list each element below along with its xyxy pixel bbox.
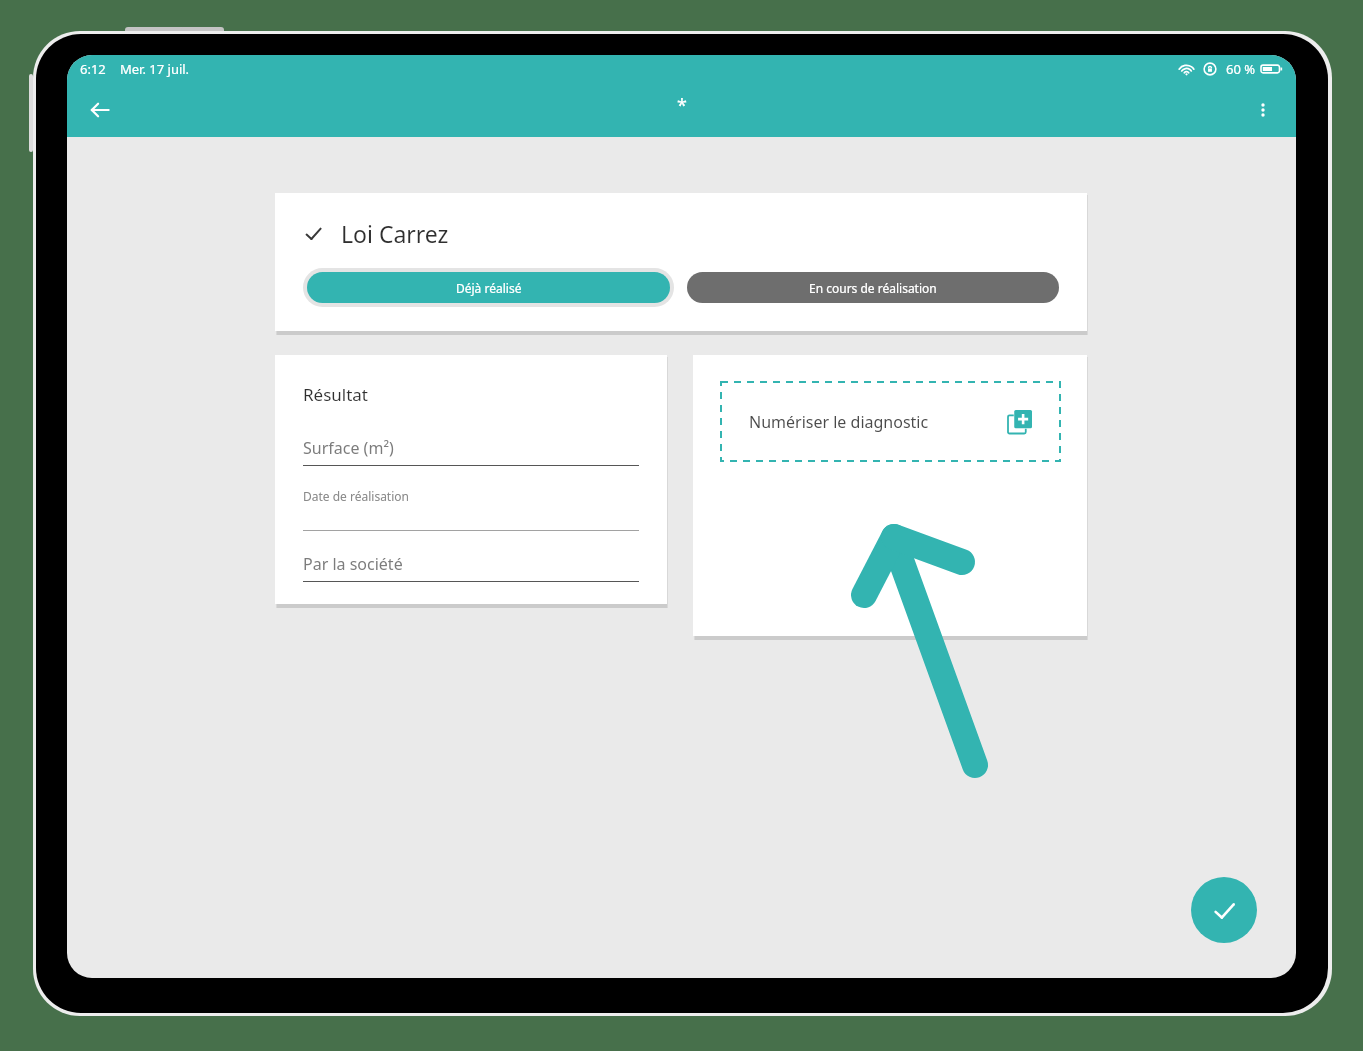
button[interactable]: Surface (m²) <box>303 437 639 466</box>
button[interactable]: Numériser le diagnostic <box>721 382 1060 461</box>
button[interactable]: Par la société <box>303 553 639 582</box>
staticText: Numériser le diagnostic <box>749 411 929 433</box>
button[interactable]: More options <box>1242 89 1284 131</box>
staticText: Déjà réalisé <box>456 280 522 296</box>
staticText: 6:12 <box>80 60 106 78</box>
staticText: Date de réalisation <box>303 488 409 504</box>
staticText: Surface (m²) <box>303 437 394 459</box>
button[interactable]: En cours de réalisation <box>687 272 1059 303</box>
staticText: Résultat <box>303 383 369 406</box>
button[interactable]: Déjà réalisé <box>307 272 670 303</box>
button[interactable]: Back <box>78 88 122 132</box>
staticText: Mer. 17 juil. <box>120 60 190 78</box>
staticText: En cours de réalisation <box>809 280 937 296</box>
staticText: 60 % <box>1226 60 1256 78</box>
staticText: Par la société <box>303 553 403 575</box>
staticText: * <box>677 93 687 118</box>
button[interactable]: Date de réalisation <box>303 488 639 531</box>
button[interactable]: Valider <box>1191 877 1257 943</box>
staticText: Loi Carrez <box>341 218 449 249</box>
